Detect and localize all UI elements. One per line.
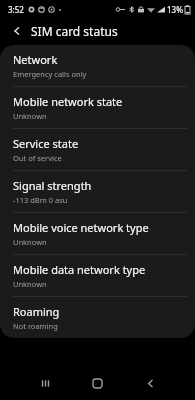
staticText: SIM card status [31, 23, 118, 39]
staticText: Mobile data network type [13, 262, 146, 277]
staticText: 3:52 [8, 4, 24, 15]
button[interactable]: Back [133, 366, 167, 400]
button[interactable]: Back [6, 20, 28, 42]
button[interactable]: Mobile voice network type [0, 213, 195, 254]
staticText: Unknown [13, 111, 47, 121]
button[interactable]: Mobile data network type [0, 255, 195, 296]
staticText: -113 dBm 0 asu [13, 195, 68, 205]
staticText: Network [13, 52, 58, 67]
button[interactable]: Recent apps [28, 366, 62, 400]
staticText: Out of service [13, 153, 62, 163]
button[interactable]: Network [0, 45, 195, 86]
button[interactable]: Service state [0, 129, 195, 170]
staticText: Emergency calls only [13, 69, 87, 79]
staticText: Mobile network state [13, 94, 123, 109]
staticText: Unknown [13, 237, 47, 247]
button[interactable]: Home [80, 366, 114, 400]
staticText: Signal strength [13, 178, 92, 193]
staticText: Unknown [13, 279, 47, 289]
staticText: Mobile voice network type [13, 220, 149, 235]
staticText: Service state [13, 136, 79, 151]
button[interactable]: Signal strength [0, 171, 195, 212]
staticText: Not roaming [13, 321, 58, 331]
staticText: Roaming [13, 304, 60, 319]
button[interactable]: Mobile network state [0, 87, 195, 128]
button[interactable]: Roaming [0, 297, 195, 338]
staticText: 13% [167, 4, 183, 15]
